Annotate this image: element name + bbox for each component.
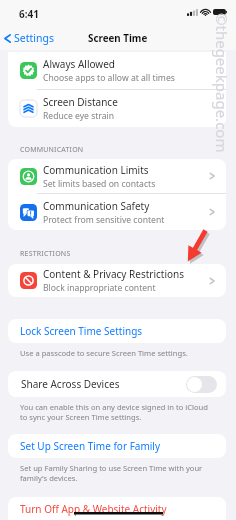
- button[interactable]: Screen Distance: [20, 90, 215, 127]
- staticText: Always Allowed: [43, 57, 115, 71]
- staticText: Set limits based on contacts: [43, 178, 156, 190]
- staticText: You can enable this on any device signed…: [20, 402, 208, 422]
- staticText: Turn Off App & Website Activity: [20, 502, 167, 516]
- staticText: ©thegeekpage.com: [212, 13, 232, 153]
- staticText: Reduce eye strain: [43, 110, 115, 122]
- staticText: Set Up Screen Time for Family: [20, 439, 161, 453]
- staticText: Block inappropriate content: [43, 282, 156, 294]
- button[interactable]: Content & Privacy Restrictions: [20, 264, 215, 297]
- staticText: Communication Safety: [43, 199, 150, 213]
- staticText: COMMUNICATION: [20, 145, 84, 155]
- staticText: Settings: [14, 31, 54, 45]
- staticText: RESTRICTIONS: [20, 249, 71, 259]
- button[interactable]: Always Allowed: [20, 52, 215, 89]
- staticText: Choose apps to allow at all times: [43, 72, 175, 84]
- staticText: Set up Family Sharing to use Screen Time…: [20, 463, 203, 483]
- button[interactable]: Share Across Devices: [21, 371, 217, 397]
- staticText: Use a passcode to secure Screen Time set…: [20, 348, 188, 358]
- button[interactable]: Communication Limits: [20, 159, 215, 193]
- staticText: Lock Screen Time Settings: [20, 324, 143, 338]
- staticText: Screen Distance: [43, 95, 118, 109]
- staticText: Screen Time: [88, 32, 148, 45]
- button[interactable]: Communication Safety: [20, 194, 215, 230]
- staticText: Protect from sensitive content: [43, 214, 165, 226]
- button[interactable]: Set Up Screen Time for Family: [8, 434, 226, 458]
- staticText: Share Across Devices: [21, 377, 120, 391]
- button[interactable]: Settings: [3, 31, 54, 45]
- button[interactable]: Lock Screen Time Settings: [8, 319, 226, 343]
- staticText: 6:41: [19, 7, 39, 21]
- button[interactable]: Turn Off App & Website Activity: [8, 497, 226, 520]
- staticText: Content & Privacy Restrictions: [43, 267, 185, 281]
- staticText: Communication Limits: [43, 163, 149, 177]
- button[interactable]: Share Across Devices toggle: [186, 376, 217, 393]
